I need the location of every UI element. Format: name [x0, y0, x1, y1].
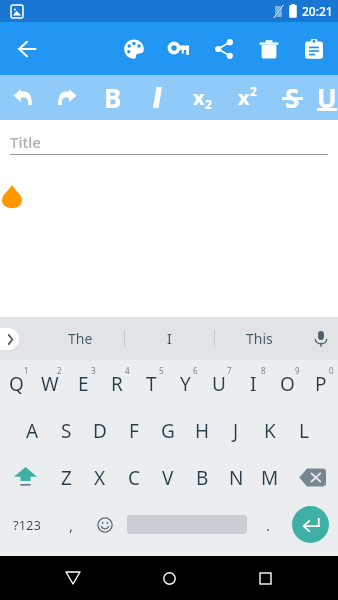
button[interactable]: Subscript	[180, 75, 225, 120]
button[interactable]: Home	[146, 556, 192, 600]
button[interactable]: ,	[53, 501, 90, 548]
button[interactable]: ?123	[0, 501, 53, 548]
button[interactable]: K	[253, 407, 287, 454]
button[interactable]: D	[83, 407, 117, 454]
button[interactable]: F	[117, 407, 151, 454]
button[interactable]: B	[185, 454, 219, 501]
button[interactable]: Delete	[246, 25, 291, 73]
staticText: D	[93, 418, 107, 444]
staticText: Y	[180, 371, 191, 397]
staticText: H	[195, 418, 210, 444]
staticText: This	[246, 329, 273, 348]
button[interactable]: G	[151, 407, 185, 454]
staticText: V	[162, 465, 174, 491]
staticText: 9	[295, 365, 300, 376]
button[interactable]: H	[185, 407, 219, 454]
staticText: 5	[159, 365, 164, 376]
staticText: 7	[227, 365, 232, 376]
button[interactable]: Shift	[0, 454, 50, 501]
button[interactable]: P	[304, 360, 338, 407]
staticText: x	[193, 84, 205, 111]
button[interactable]: Underline	[315, 75, 338, 120]
button[interactable]: J	[219, 407, 253, 454]
staticText: G	[161, 418, 175, 444]
button[interactable]: Redo	[45, 75, 90, 120]
staticText: P	[315, 371, 327, 397]
staticText: S	[285, 80, 300, 115]
button[interactable]: Superscript	[225, 75, 270, 120]
staticText: J	[233, 418, 239, 444]
button[interactable]: Share	[201, 25, 246, 73]
button[interactable]: M	[253, 454, 287, 501]
button[interactable]: Recent apps	[242, 556, 288, 600]
staticText: .	[266, 515, 271, 535]
button[interactable]: T	[134, 360, 168, 407]
staticText: 6	[193, 365, 198, 376]
button[interactable]: L	[287, 407, 321, 454]
staticText: U	[317, 80, 337, 115]
button[interactable]: Z	[50, 454, 83, 501]
button[interactable]: Voice input	[304, 322, 338, 356]
button[interactable]: Italic	[135, 75, 180, 120]
button[interactable]: Delete	[287, 454, 338, 501]
staticText: B	[104, 80, 122, 115]
button[interactable]: Q	[0, 360, 33, 407]
staticText: X	[94, 465, 106, 491]
button[interactable]: Enter	[282, 501, 338, 548]
staticText: O	[280, 371, 295, 397]
staticText: E	[78, 371, 89, 397]
button[interactable]: .	[255, 501, 282, 548]
button[interactable]: N	[219, 454, 253, 501]
button[interactable]: I	[236, 360, 270, 407]
staticText: Z	[61, 465, 72, 491]
button[interactable]: V	[151, 454, 185, 501]
staticText: B	[196, 465, 209, 491]
button[interactable]: This	[215, 317, 304, 360]
button[interactable]: Space	[119, 501, 255, 548]
button[interactable]: C	[117, 454, 151, 501]
staticText: W	[41, 371, 59, 397]
button[interactable]: W	[33, 360, 66, 407]
button[interactable]: A	[16, 407, 49, 454]
staticText: The	[68, 329, 93, 348]
staticText: 4	[125, 365, 130, 376]
staticText: K	[264, 418, 276, 444]
staticText: Title	[10, 132, 41, 152]
button[interactable]: U	[202, 360, 236, 407]
staticText: 0	[329, 365, 334, 376]
button[interactable]: Bold	[90, 75, 135, 120]
button[interactable]: Navigate up	[5, 27, 49, 71]
button[interactable]: X	[83, 454, 117, 501]
staticText: F	[129, 418, 139, 444]
button[interactable]: O	[270, 360, 304, 407]
button[interactable]: Y	[168, 360, 202, 407]
staticText: S	[61, 418, 72, 444]
staticText: 3	[91, 365, 96, 376]
button[interactable]: Emoji	[90, 501, 119, 548]
staticText: A	[26, 418, 39, 444]
staticText: 2	[205, 96, 212, 112]
button[interactable]: Back	[50, 556, 96, 600]
staticText: I	[167, 329, 172, 348]
button[interactable]: More suggestions	[0, 328, 19, 350]
button[interactable]: Change colour	[111, 25, 156, 73]
button[interactable]: I	[125, 317, 214, 360]
button[interactable]: S	[49, 407, 83, 454]
staticText: ,	[69, 515, 74, 535]
staticText: L	[299, 418, 309, 444]
staticText: 8	[261, 365, 266, 376]
button[interactable]: Strikethrough	[270, 75, 315, 120]
staticText: U	[212, 371, 226, 397]
button[interactable]: Password	[156, 25, 201, 73]
button[interactable]: E	[66, 360, 100, 407]
button[interactable]: R	[100, 360, 134, 407]
button[interactable]: The	[36, 317, 124, 360]
staticText: I	[250, 371, 257, 397]
button[interactable]: Undo	[0, 75, 45, 120]
staticText: ?123	[13, 516, 41, 534]
staticText: 20:21	[302, 3, 333, 19]
staticText: x	[238, 84, 250, 111]
staticText: C	[128, 465, 141, 491]
button[interactable]: Notes	[291, 25, 336, 73]
staticText: R	[111, 371, 123, 397]
